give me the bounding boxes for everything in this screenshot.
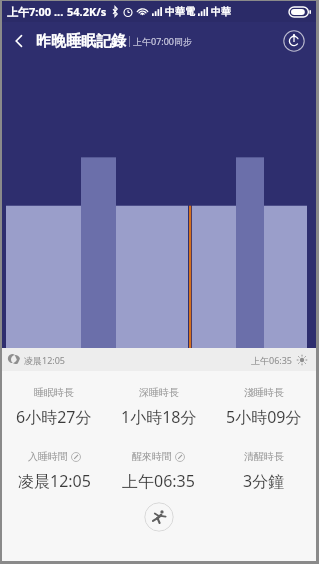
staticText: 1小時18分: [121, 406, 197, 428]
staticText: 上午06:35: [251, 354, 293, 366]
button[interactable]: 入睡時間: [2, 450, 106, 492]
staticText: 上午7:00: [7, 4, 51, 19]
staticText: ...: [54, 4, 64, 19]
staticText: 3分鐘: [243, 470, 285, 492]
staticText: 54.2K/s: [67, 4, 107, 19]
staticText: 中華電: [165, 5, 195, 18]
staticText: 上午06:35: [122, 470, 195, 492]
staticText: 6小時27分: [16, 406, 92, 428]
staticText: 凌晨12:05: [18, 470, 91, 492]
staticText: 清醒時長: [244, 450, 284, 463]
button[interactable]: Sync: [282, 29, 306, 53]
button[interactable]: Activity: [144, 502, 174, 532]
button[interactable]: Back: [2, 24, 36, 58]
staticText: 凌晨12:05: [24, 354, 66, 366]
staticText: 5小時09分: [226, 406, 302, 428]
button[interactable]: 睡眠時長: [2, 386, 106, 428]
button[interactable]: 深睡時長: [106, 386, 211, 428]
staticText: 中華: [211, 5, 231, 18]
staticText: 醒來時間: [132, 450, 172, 463]
staticText: 淺睡時長: [244, 386, 284, 399]
staticText: 入睡時間: [28, 450, 68, 463]
staticText: 上午07:00同步: [133, 35, 193, 47]
staticText: 昨晚睡眠記錄: [36, 32, 126, 51]
staticText: 深睡時長: [139, 386, 179, 399]
button[interactable]: 淺睡時長: [211, 386, 316, 428]
button[interactable]: 醒來時間: [106, 450, 211, 492]
staticText: 睡眠時長: [34, 386, 74, 399]
button[interactable]: 清醒時長: [211, 450, 316, 492]
